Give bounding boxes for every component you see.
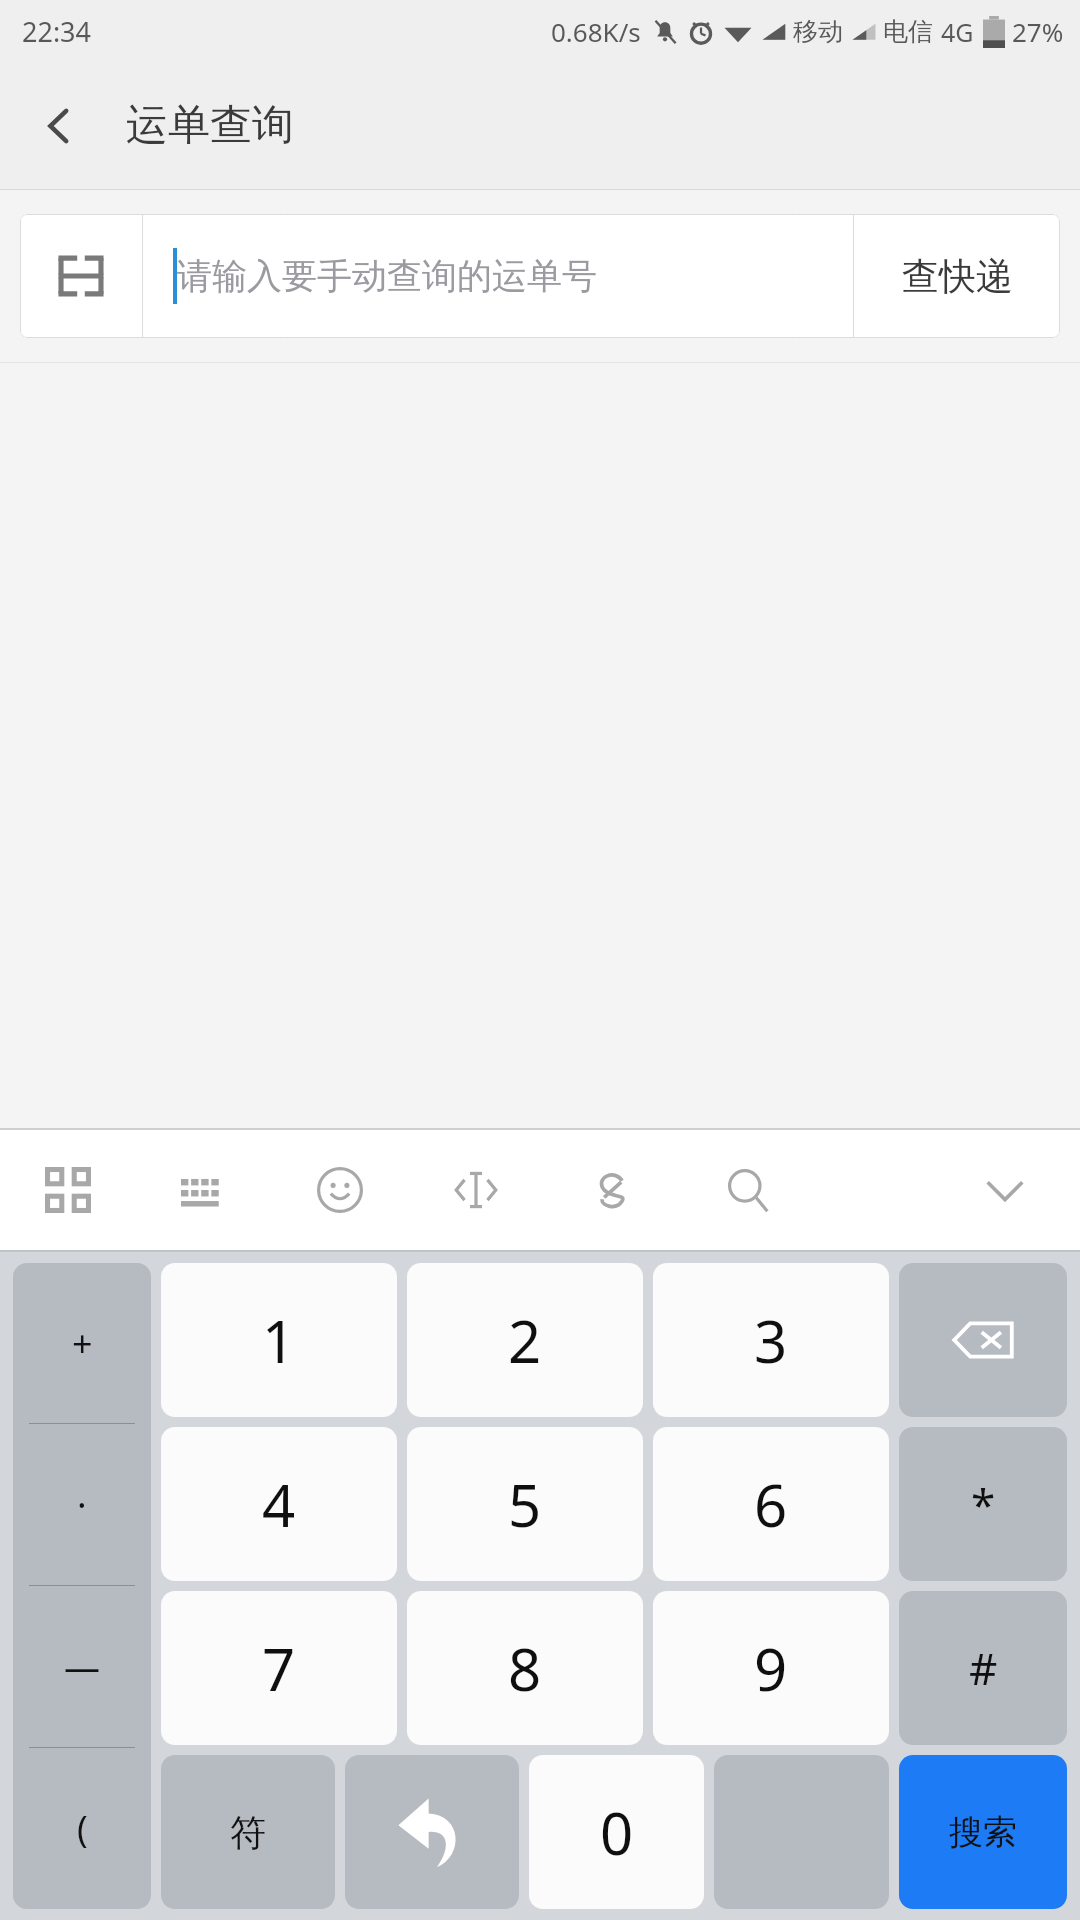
staticText: 7 xyxy=(262,1629,296,1708)
button[interactable]: 符 xyxy=(161,1755,335,1909)
button[interactable]: + xyxy=(13,1263,151,1909)
staticText: · xyxy=(77,1480,87,1529)
button[interactable]: 0 xyxy=(529,1755,704,1909)
button[interactable]: 7 xyxy=(161,1591,397,1745)
staticText: 8 xyxy=(508,1629,542,1708)
button[interactable]: Hide keyboard xyxy=(930,1130,1080,1250)
button[interactable]: 9 xyxy=(653,1591,889,1745)
button[interactable]: Keyboard layout xyxy=(136,1130,272,1250)
button[interactable]: 搜索 xyxy=(899,1755,1067,1909)
staticText: — xyxy=(64,1642,101,1691)
staticText: 0.68K/s xyxy=(551,14,641,49)
staticText: * xyxy=(971,1474,996,1534)
button[interactable]: 8 xyxy=(407,1591,643,1745)
button[interactable]: Emoji xyxy=(272,1130,408,1250)
staticText: 4G xyxy=(941,15,974,49)
button[interactable]: 1 xyxy=(161,1263,397,1417)
button[interactable]: * xyxy=(899,1427,1067,1581)
button[interactable]: 2 xyxy=(407,1263,643,1417)
button[interactable]: Scan barcode xyxy=(20,214,142,338)
staticText: 3 xyxy=(754,1301,788,1380)
button[interactable]: Symbols grid xyxy=(0,1130,136,1250)
staticText: 符 xyxy=(230,1810,266,1855)
staticText: 9 xyxy=(754,1629,788,1708)
button[interactable]: 请输入要手动查询的运单号 xyxy=(143,214,853,338)
staticText: 搜索 xyxy=(949,1811,1017,1854)
staticText: ( xyxy=(77,1804,88,1853)
staticText: 运单查询 xyxy=(126,99,294,152)
staticText: 查快递 xyxy=(902,253,1013,300)
staticText: 6 xyxy=(754,1465,788,1544)
button[interactable]: Backspace xyxy=(899,1263,1067,1417)
staticText: 1 xyxy=(262,1301,296,1380)
button[interactable]: 4 xyxy=(161,1427,397,1581)
staticText: 移动 xyxy=(793,16,843,47)
staticText: 27% xyxy=(1012,14,1064,49)
button[interactable]: Return xyxy=(345,1755,519,1909)
button[interactable]: # xyxy=(899,1591,1067,1745)
staticText: # xyxy=(969,1638,998,1698)
button[interactable]: 6 xyxy=(653,1427,889,1581)
button[interactable]: Search xyxy=(680,1130,816,1250)
staticText: 4 xyxy=(262,1465,296,1544)
staticText: 电信 xyxy=(883,16,933,47)
button[interactable]: 5 xyxy=(407,1427,643,1581)
staticText: 请输入要手动查询的运单号 xyxy=(177,254,597,298)
button[interactable]: Text cursor xyxy=(408,1130,544,1250)
staticText: 22:34 xyxy=(22,13,92,50)
staticText: 2 xyxy=(508,1301,542,1380)
staticText: 5 xyxy=(508,1465,542,1544)
button[interactable]: Back xyxy=(26,93,92,159)
staticText: 0 xyxy=(600,1793,634,1872)
button[interactable]: 3 xyxy=(653,1263,889,1417)
button[interactable]: 查快递 xyxy=(854,214,1060,338)
staticText: + xyxy=(72,1319,93,1368)
button[interactable]: Clipboard xyxy=(544,1130,680,1250)
